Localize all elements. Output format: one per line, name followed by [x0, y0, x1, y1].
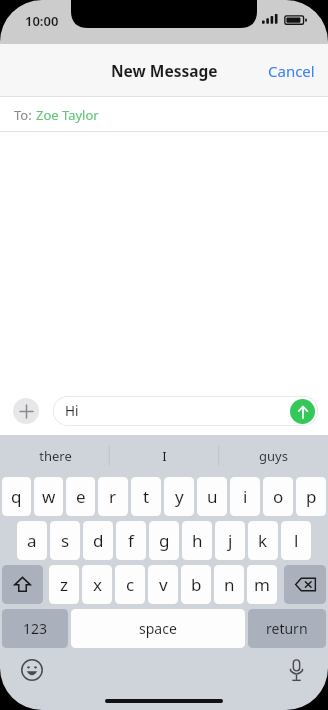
- staticText: k: [258, 529, 268, 552]
- staticText: New Message: [111, 60, 218, 81]
- staticText: 123: [23, 619, 48, 638]
- button[interactable]: Add attachment: [13, 398, 39, 424]
- staticText: a: [27, 529, 37, 552]
- button[interactable]: Shift: [2, 565, 43, 604]
- staticText: l: [294, 529, 299, 552]
- button[interactable]: l: [281, 521, 311, 560]
- staticText: p: [306, 485, 317, 508]
- staticText: m: [254, 573, 270, 596]
- staticText: x: [93, 573, 102, 596]
- button[interactable]: g: [149, 521, 179, 560]
- button[interactable]: i: [230, 477, 260, 516]
- button[interactable]: q: [2, 477, 31, 516]
- button[interactable]: v: [148, 565, 178, 604]
- button[interactable]: Hi: [53, 396, 318, 426]
- staticText: 10:00: [25, 12, 59, 30]
- staticText: h: [192, 529, 203, 552]
- button[interactable]: f: [116, 521, 146, 560]
- button[interactable]: h: [182, 521, 212, 560]
- staticText: I: [162, 447, 167, 465]
- button[interactable]: t: [131, 477, 161, 516]
- staticText: n: [224, 573, 235, 596]
- button[interactable]: Backspace: [284, 565, 326, 604]
- button[interactable]: Emoji: [18, 656, 46, 684]
- button[interactable]: Send: [290, 399, 315, 424]
- staticText: g: [159, 529, 170, 552]
- button[interactable]: guys: [219, 435, 328, 476]
- staticText: w: [42, 485, 56, 508]
- button[interactable]: z: [49, 565, 79, 604]
- button[interactable]: Cancel: [255, 53, 328, 89]
- staticText: Zoe Taylor: [36, 106, 99, 124]
- staticText: there: [39, 447, 72, 465]
- staticText: u: [207, 485, 218, 508]
- button[interactable]: s: [50, 521, 80, 560]
- button[interactable]: n: [214, 565, 244, 604]
- staticText: j: [228, 529, 233, 552]
- button[interactable]: m: [247, 565, 277, 604]
- staticText: r: [109, 485, 117, 508]
- button[interactable]: Zoe Taylor: [36, 106, 99, 124]
- staticText: e: [76, 485, 86, 508]
- button[interactable]: d: [83, 521, 113, 560]
- staticText: s: [61, 529, 70, 552]
- button[interactable]: space: [71, 609, 245, 648]
- staticText: y: [175, 485, 184, 508]
- button[interactable]: c: [115, 565, 145, 604]
- button[interactable]: x: [82, 565, 112, 604]
- staticText: i: [243, 485, 248, 508]
- staticText: space: [139, 619, 177, 638]
- button[interactable]: 123: [2, 609, 68, 648]
- staticText: q: [11, 485, 22, 508]
- button[interactable]: r: [98, 477, 128, 516]
- button[interactable]: return: [248, 609, 326, 648]
- staticText: t: [143, 485, 150, 508]
- button[interactable]: Dictation: [282, 656, 310, 684]
- button[interactable]: a: [17, 521, 47, 560]
- button[interactable]: b: [181, 565, 211, 604]
- button[interactable]: w: [34, 477, 63, 516]
- staticText: Hi: [65, 402, 79, 420]
- staticText: o: [273, 485, 284, 508]
- staticText: Cancel: [268, 61, 315, 81]
- button[interactable]: p: [296, 477, 326, 516]
- staticText: d: [93, 529, 104, 552]
- button[interactable]: u: [197, 477, 227, 516]
- button[interactable]: there: [0, 435, 110, 476]
- button[interactable]: k: [248, 521, 278, 560]
- button[interactable]: y: [164, 477, 194, 516]
- staticText: f: [128, 529, 134, 552]
- button[interactable]: j: [215, 521, 245, 560]
- button[interactable]: I: [110, 435, 219, 476]
- staticText: To:: [14, 106, 36, 124]
- staticText: guys: [259, 447, 288, 465]
- staticText: v: [159, 573, 168, 596]
- staticText: z: [60, 573, 68, 596]
- staticText: b: [191, 573, 202, 596]
- button[interactable]: o: [263, 477, 293, 516]
- staticText: return: [266, 619, 308, 638]
- button[interactable]: e: [66, 477, 95, 516]
- staticText: c: [126, 573, 135, 596]
